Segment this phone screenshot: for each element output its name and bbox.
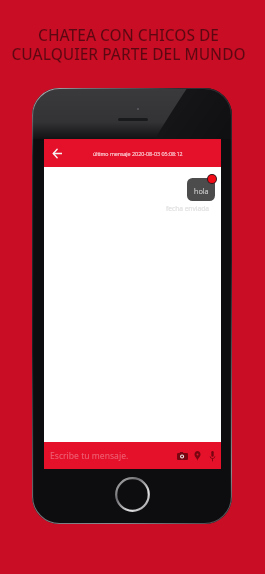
- staticText: hola: [194, 186, 209, 196]
- staticText: último mensaje 2020-08-03 05:08:12: [93, 150, 183, 157]
- button[interactable]: Back: [47, 143, 67, 163]
- button[interactable]: Camera: [176, 449, 189, 462]
- button[interactable]: hola: [187, 178, 215, 201]
- staticText: fecha enviada: [166, 204, 209, 213]
- button[interactable]: Microphone: [206, 449, 219, 462]
- button[interactable]: Location: [191, 449, 204, 462]
- staticText: CHATEA CON CHICOS DE CUALQUIER PARTE DEL…: [11, 24, 246, 64]
- button[interactable]: Unread: [207, 174, 217, 184]
- staticText: Escribe tu mensaje.: [50, 450, 129, 462]
